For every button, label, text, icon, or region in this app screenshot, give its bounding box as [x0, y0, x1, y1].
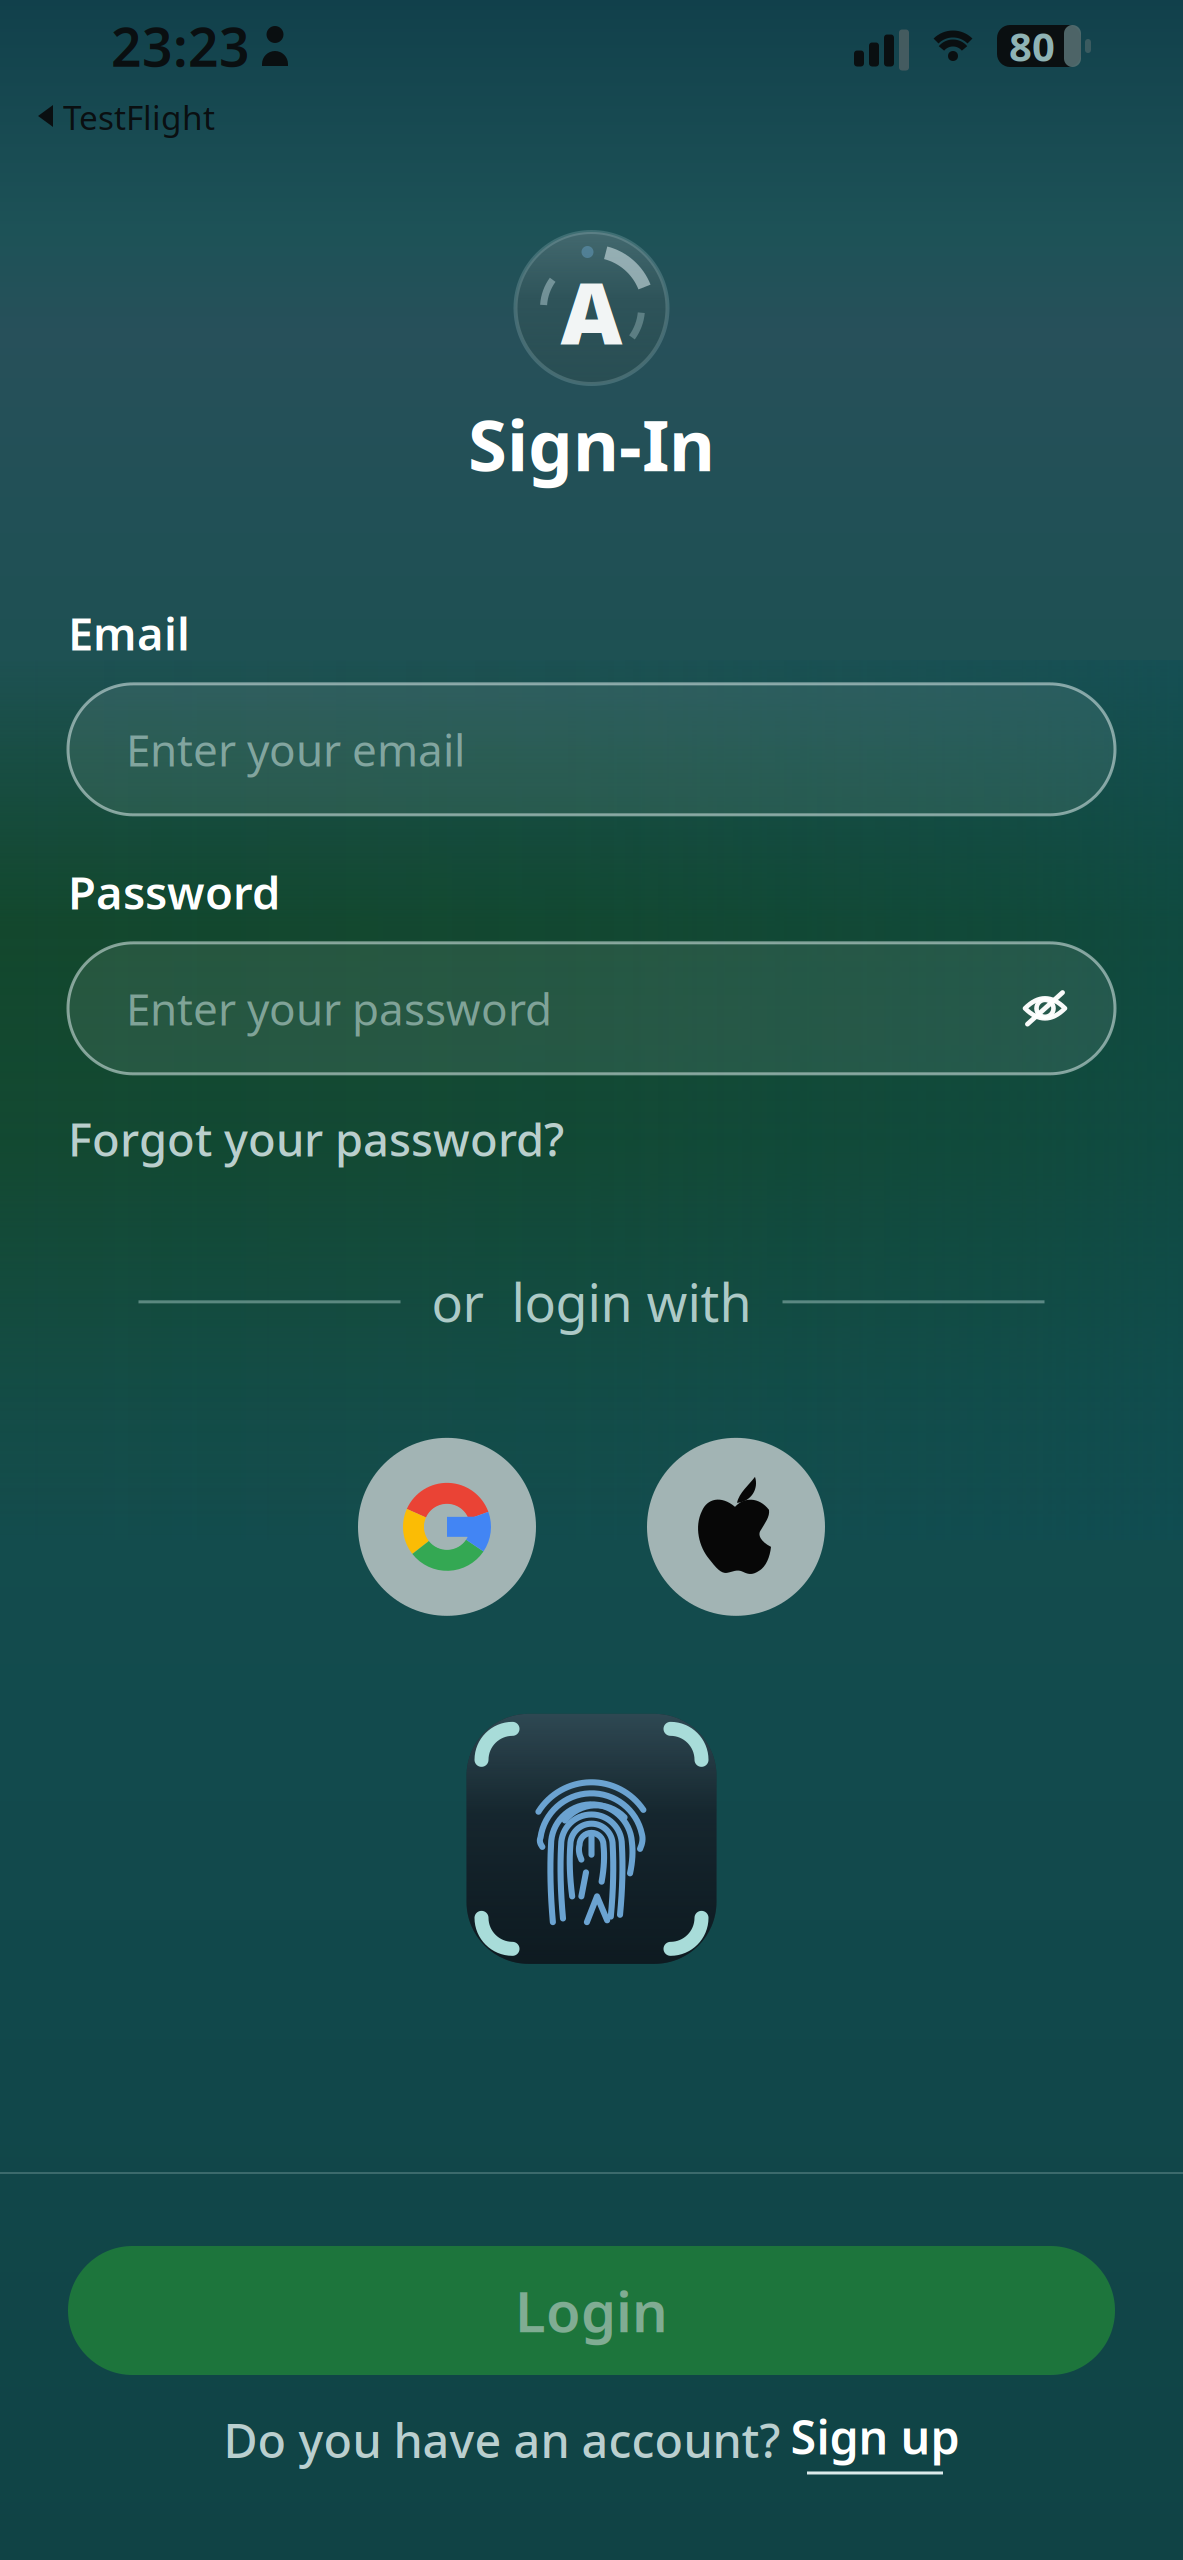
staticText: A [560, 254, 622, 368]
staticText: Do you have an account? [223, 2409, 780, 2471]
staticText: Login [515, 2273, 668, 2348]
button[interactable]: Do you have an account? [141, 2410, 1041, 2470]
button[interactable]: Sign in with Google [358, 1438, 536, 1616]
staticText: Enter your email [126, 720, 465, 778]
staticText: Forgot your password? [68, 1109, 564, 1169]
staticText: TestFlight [63, 95, 215, 139]
button[interactable]: Login [68, 2246, 1115, 2375]
staticText: Email [68, 603, 190, 663]
staticText: Enter your password [126, 979, 552, 1037]
staticText: Sign up [790, 2405, 959, 2467]
staticText: or login with [431, 1267, 751, 1336]
staticText: Sign-In [468, 397, 715, 491]
button[interactable]: Sign in with Apple [647, 1438, 825, 1616]
staticText: 23:23 [111, 11, 250, 81]
staticText: 80 [1009, 19, 1055, 72]
staticText: Password [68, 862, 280, 922]
button[interactable]: Forgot your password? [68, 1115, 564, 1163]
button[interactable]: Sign in with fingerprint [466, 1714, 716, 1964]
button[interactable]: Back to TestFlight [0, 89, 229, 145]
